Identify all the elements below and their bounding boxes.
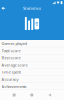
button[interactable]: Achievements [0, 83, 64, 90]
button[interactable]: Accuracy [0, 76, 64, 83]
staticText: Time spent [2, 69, 21, 75]
staticText: Games played [2, 41, 27, 46]
staticText: Statistics [23, 6, 41, 11]
staticText: Accuracy [2, 76, 19, 82]
button[interactable]: Games played [0, 40, 64, 47]
button[interactable]: Average score [0, 61, 64, 69]
button[interactable]: Time spent [0, 69, 64, 76]
button[interactable]: Back [46, 91, 53, 99]
staticText: Achievements [2, 84, 27, 89]
button[interactable]: Back [0, 5, 6, 11]
staticText: Total score [2, 48, 21, 53]
staticText: Average score [2, 62, 28, 67]
button[interactable]: Home [28, 91, 35, 99]
button[interactable]: Recents [11, 92, 18, 98]
button[interactable]: Total score [0, 47, 64, 54]
staticText: Best score [2, 55, 21, 60]
button[interactable]: Best score [0, 54, 64, 61]
